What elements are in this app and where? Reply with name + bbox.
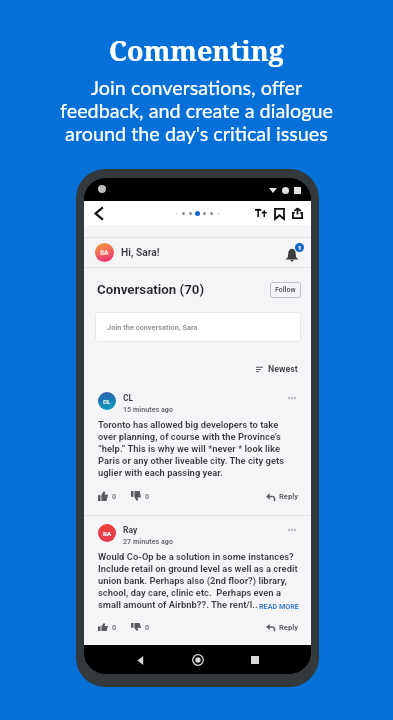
button[interactable]: Reply xyxy=(266,623,299,631)
staticText: Would Co-Op be a solution in some instan… xyxy=(98,551,299,610)
staticText: RA xyxy=(103,530,112,537)
staticText: Conversation (70) xyxy=(97,282,205,298)
button[interactable]: 0 xyxy=(131,491,150,501)
button[interactable]: Text size xyxy=(252,204,270,222)
staticText: Join the conversation, Sara xyxy=(107,323,198,332)
staticText: 15 minutes ago xyxy=(123,405,174,413)
button[interactable]: More options xyxy=(285,523,299,537)
staticText: 0 xyxy=(112,623,117,631)
staticText: CL xyxy=(103,398,111,405)
button[interactable]: Back xyxy=(128,648,152,672)
staticText: CL xyxy=(123,393,134,403)
button[interactable]: More options xyxy=(285,391,299,405)
button[interactable]: Reply xyxy=(266,492,299,501)
button[interactable]: READ MORE xyxy=(259,602,299,610)
button[interactable]: Notifications xyxy=(285,243,304,262)
staticText: 0 xyxy=(145,623,150,631)
button[interactable]: SA xyxy=(84,238,311,267)
staticText: 27 minutes ago xyxy=(123,537,174,545)
button[interactable]: 0 xyxy=(131,623,150,631)
staticText: Commenting xyxy=(109,32,284,69)
button[interactable]: 0 xyxy=(98,623,117,631)
staticText: Join conversations, offer feedback, and … xyxy=(60,75,333,145)
staticText: Follow xyxy=(275,286,296,294)
button[interactable]: Join the conversation, Sara xyxy=(95,312,301,342)
button[interactable]: Bookmark xyxy=(270,204,288,222)
button[interactable]: Newest xyxy=(256,364,298,374)
staticText: 1 xyxy=(298,244,302,251)
staticText: Hi, Sara! xyxy=(121,247,160,259)
button[interactable]: Back xyxy=(89,203,109,223)
button[interactable]: Recents xyxy=(243,648,267,672)
button[interactable]: Follow xyxy=(270,282,301,298)
staticText: SA xyxy=(100,249,109,257)
button[interactable]: Share xyxy=(288,204,306,222)
staticText: Reply xyxy=(279,623,299,631)
button[interactable]: Home xyxy=(186,648,210,672)
staticText: Toronto has allowed big developers to ta… xyxy=(98,419,299,478)
staticText: Newest xyxy=(268,364,298,374)
staticText: Reply xyxy=(279,492,299,501)
staticText: 0 xyxy=(145,492,150,500)
staticText: Ray xyxy=(123,525,138,535)
button[interactable]: 0 xyxy=(98,491,117,501)
staticText: READ MORE xyxy=(259,602,299,610)
staticText: 0 xyxy=(112,492,117,500)
